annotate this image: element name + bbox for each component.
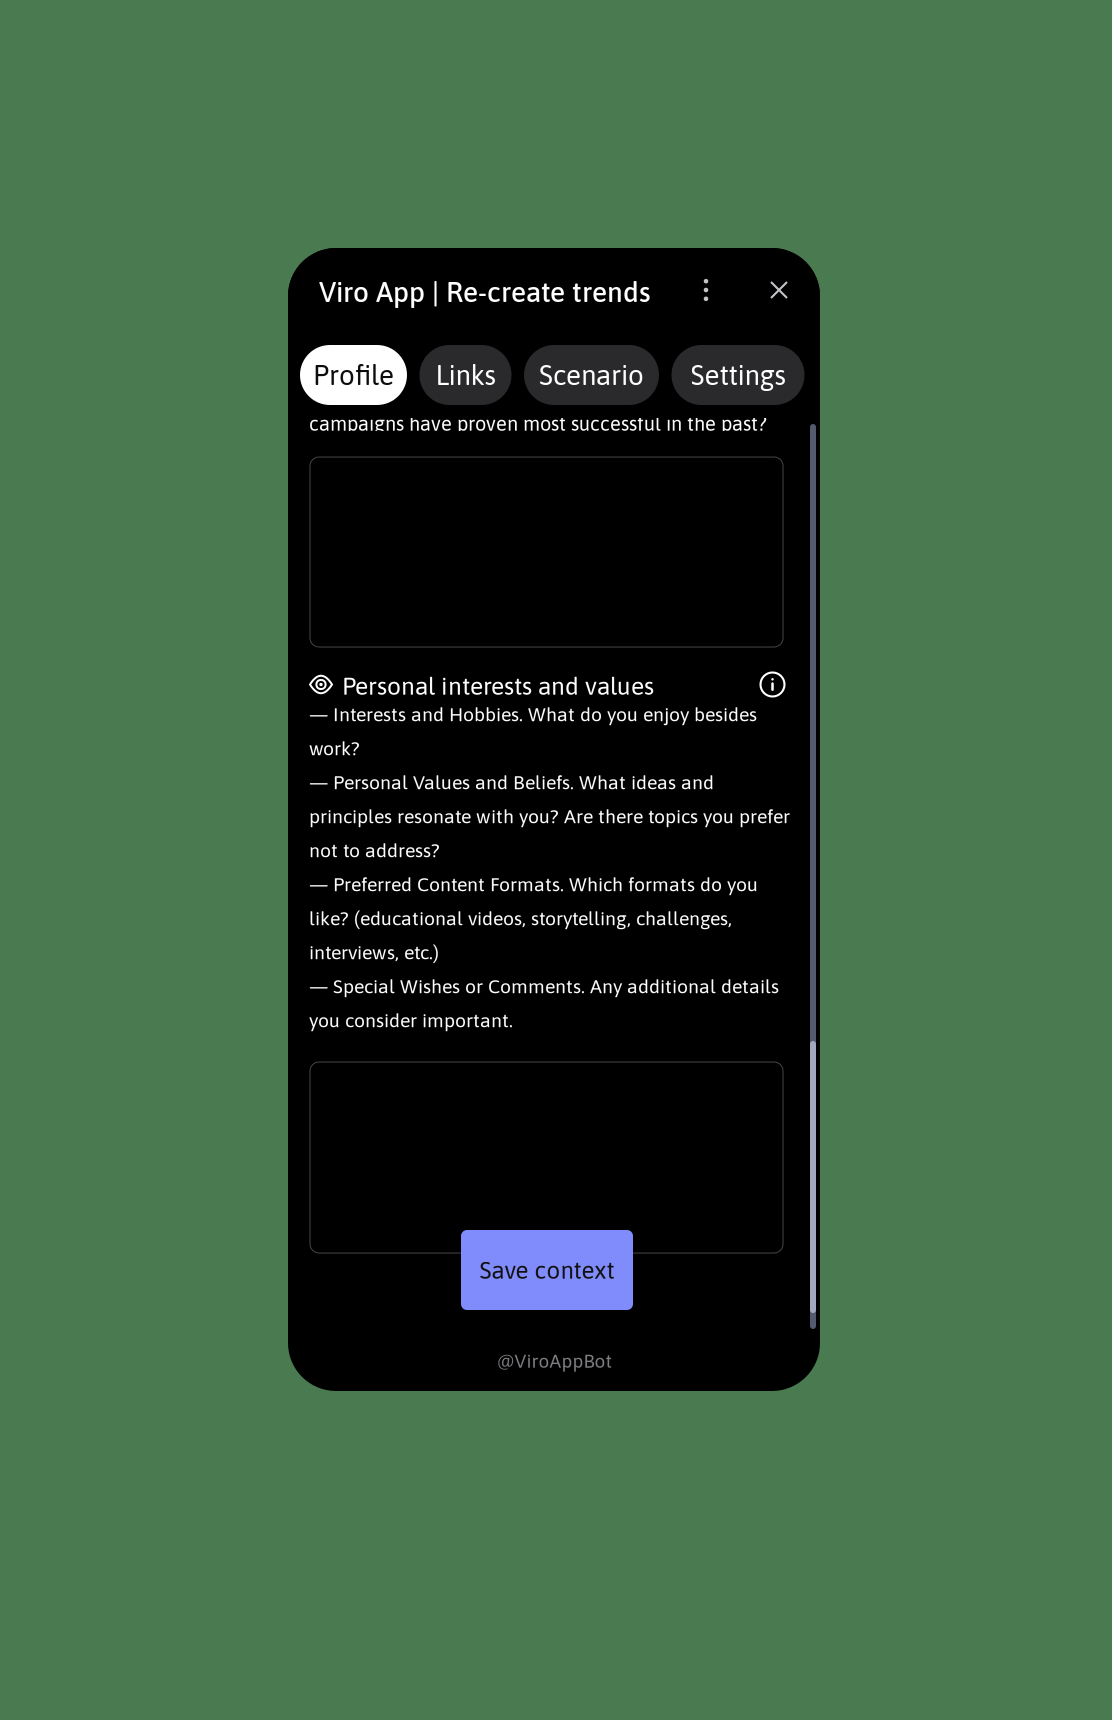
staticText: @ViroAppBot (496, 1350, 611, 1372)
button[interactable]: Settings (671, 345, 804, 405)
button[interactable]: Links (419, 345, 511, 405)
staticText: Links (435, 359, 495, 391)
staticText: — Interests and Hobbies. What do you enj… (309, 703, 790, 1031)
staticText: Settings (690, 359, 785, 391)
button[interactable]: More options (688, 272, 724, 308)
staticText: campaigns have proven most successful in… (309, 412, 767, 435)
staticText: Personal interests and values (342, 672, 654, 700)
button[interactable]: Scenario (524, 345, 659, 405)
staticText: Scenario (539, 359, 644, 391)
button[interactable]: Close (761, 272, 797, 308)
staticText: Profile (313, 359, 394, 391)
staticText: Save context (479, 1256, 614, 1284)
button[interactable]: Save context (461, 1230, 633, 1310)
button[interactable]: Profile (300, 345, 407, 405)
staticText: Viro App | Re-create trends (319, 276, 651, 308)
